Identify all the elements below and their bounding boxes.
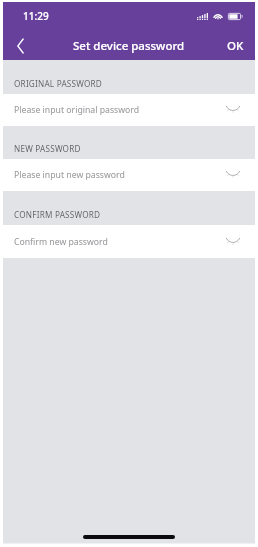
staticText: 11:29 [23,9,49,23]
staticText: OK [227,38,244,54]
button[interactable]: Please input new password [0,159,258,191]
button[interactable]: OK [213,32,258,60]
button[interactable]: Show password [223,232,243,252]
staticText: Please input new password [14,169,223,181]
staticText: ORIGINAL PASSWORD [14,78,103,89]
button[interactable]: Show password [223,100,243,120]
staticText: Set device password [73,38,185,54]
button[interactable]: Back [0,32,40,60]
staticText: Please input original password [14,104,223,116]
staticText: NEW PASSWORD [14,143,81,154]
button[interactable]: Please input original password [0,94,258,126]
button[interactable]: Confirm new password [0,225,258,258]
staticText: CONFIRM PASSWORD [14,209,101,220]
staticText: Confirm new password [14,236,223,248]
button[interactable]: Show password [223,165,243,185]
